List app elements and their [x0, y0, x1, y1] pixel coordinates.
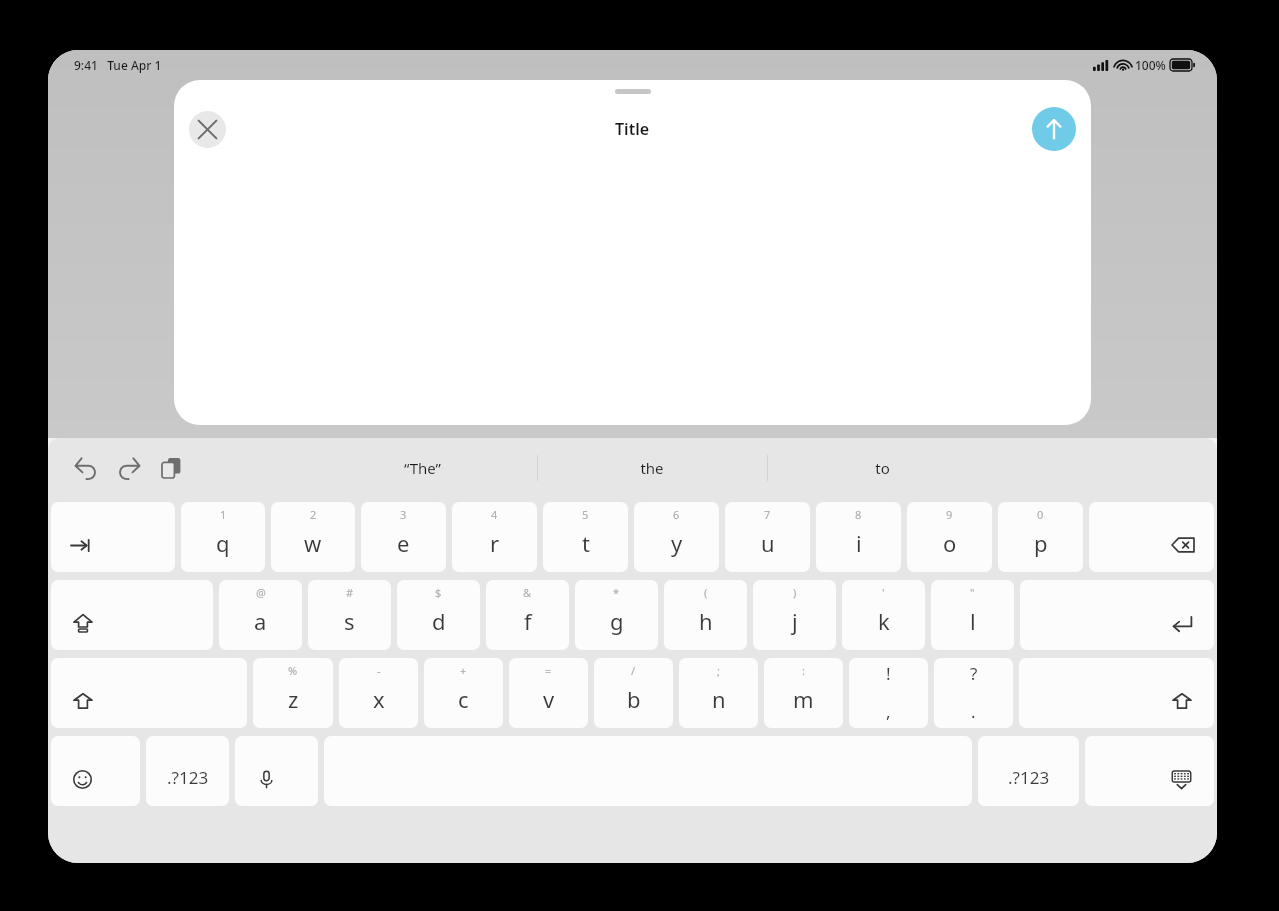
button[interactable]: :	[764, 658, 843, 728]
button[interactable]: Caps lock	[51, 580, 213, 650]
button[interactable]: Dictation	[235, 736, 318, 806]
staticText: !	[886, 662, 891, 685]
staticText: a	[254, 606, 267, 636]
staticText: -	[377, 663, 381, 678]
button[interactable]: 3	[361, 502, 446, 572]
button[interactable]: 6	[634, 502, 719, 572]
staticText: +	[460, 663, 467, 678]
staticText: ,	[886, 700, 891, 723]
staticText: k	[878, 606, 890, 636]
button[interactable]: (	[664, 580, 747, 650]
staticText: /	[631, 663, 636, 678]
staticText: b	[627, 684, 641, 714]
button[interactable]: Undo	[66, 448, 106, 488]
button[interactable]: Emoji	[51, 736, 140, 806]
button[interactable]: 0	[998, 502, 1083, 572]
button[interactable]: $	[397, 580, 480, 650]
button[interactable]: to	[767, 438, 997, 498]
button[interactable]: 8	[816, 502, 901, 572]
button[interactable]: "	[931, 580, 1014, 650]
staticText: q	[216, 528, 230, 558]
staticText: #	[346, 585, 354, 600]
staticText: 100%	[1135, 57, 1166, 73]
staticText: )	[793, 585, 797, 600]
button[interactable]: Hide keyboard	[1085, 736, 1214, 806]
button[interactable]: Send	[1032, 107, 1076, 151]
button[interactable]: ?	[934, 658, 1013, 728]
button[interactable]: Shift	[51, 658, 247, 728]
button[interactable]: =	[509, 658, 588, 728]
button[interactable]: 4	[452, 502, 537, 572]
button[interactable]: /	[594, 658, 673, 728]
button[interactable]: Paste	[152, 448, 192, 488]
button[interactable]: “The”	[308, 438, 537, 498]
staticText: ;	[717, 663, 720, 678]
button[interactable]: 7	[725, 502, 810, 572]
staticText: 7	[764, 507, 771, 522]
staticText: 9:41 Tue Apr 1	[74, 57, 162, 73]
button[interactable]: .?123	[146, 736, 229, 806]
staticText: 8	[855, 507, 862, 522]
button[interactable]: %	[253, 658, 333, 728]
button[interactable]: Return	[1020, 580, 1214, 650]
staticText: 1	[220, 507, 227, 522]
button[interactable]: Tab	[51, 502, 175, 572]
staticText: t	[582, 528, 590, 558]
staticText: y	[671, 528, 683, 558]
staticText: $	[435, 585, 442, 600]
staticText: .?123	[167, 766, 209, 789]
button[interactable]: the	[537, 438, 767, 498]
staticText: n	[712, 684, 726, 714]
staticText: s	[344, 606, 355, 636]
staticText: c	[458, 684, 469, 714]
button[interactable]: -	[339, 658, 418, 728]
staticText: i	[856, 528, 862, 558]
staticText: v	[543, 684, 555, 714]
staticText: (	[704, 585, 708, 600]
button[interactable]: Redo	[109, 448, 149, 488]
button[interactable]: !	[849, 658, 928, 728]
button[interactable]: 9	[907, 502, 992, 572]
staticText: .	[971, 700, 976, 723]
staticText: Title	[615, 118, 650, 140]
staticText: w	[304, 528, 322, 558]
staticText: 3	[400, 507, 407, 522]
button[interactable]: *	[575, 580, 658, 650]
button[interactable]: ;	[679, 658, 758, 728]
staticText: '	[882, 585, 885, 600]
staticText: @	[256, 585, 266, 600]
button[interactable]: Backspace	[1089, 502, 1214, 572]
staticText: m	[793, 684, 814, 714]
button[interactable]: '	[842, 580, 925, 650]
button[interactable]: @	[219, 580, 302, 650]
staticText: o	[943, 528, 957, 558]
staticText: l	[970, 606, 976, 636]
button[interactable]: &	[486, 580, 569, 650]
staticText: r	[490, 528, 500, 558]
staticText: 0	[1037, 507, 1044, 522]
button[interactable]: )	[753, 580, 836, 650]
staticText: to	[875, 458, 890, 478]
staticText: z	[288, 684, 299, 714]
staticText: 2	[310, 507, 317, 522]
button[interactable]: 2	[271, 502, 355, 572]
button[interactable]: 5	[543, 502, 628, 572]
button[interactable]: +	[424, 658, 503, 728]
staticText: the	[640, 458, 664, 478]
staticText: d	[432, 606, 446, 636]
staticText: =	[545, 663, 552, 678]
staticText: 4	[491, 507, 498, 522]
staticText: 9	[946, 507, 953, 522]
button[interactable]: Shift	[1019, 658, 1214, 728]
button[interactable]: 1	[181, 502, 265, 572]
staticText: 6	[673, 507, 680, 522]
button[interactable]: #	[308, 580, 391, 650]
button[interactable]: Close	[189, 111, 226, 148]
staticText: u	[761, 528, 775, 558]
staticText: p	[1034, 528, 1048, 558]
staticText: f	[524, 606, 532, 636]
button[interactable]: .?123	[978, 736, 1079, 806]
staticText: "	[970, 585, 975, 600]
staticText: :	[802, 663, 805, 678]
